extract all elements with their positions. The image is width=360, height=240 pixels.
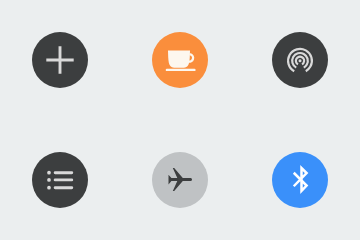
button[interactable]: Add [32,32,88,88]
button[interactable]: Airplane mode [152,152,208,208]
button[interactable]: Bluetooth [272,152,328,208]
button[interactable]: Cast [272,32,328,88]
button[interactable]: List [32,152,88,208]
button[interactable]: Coffee [152,32,208,88]
